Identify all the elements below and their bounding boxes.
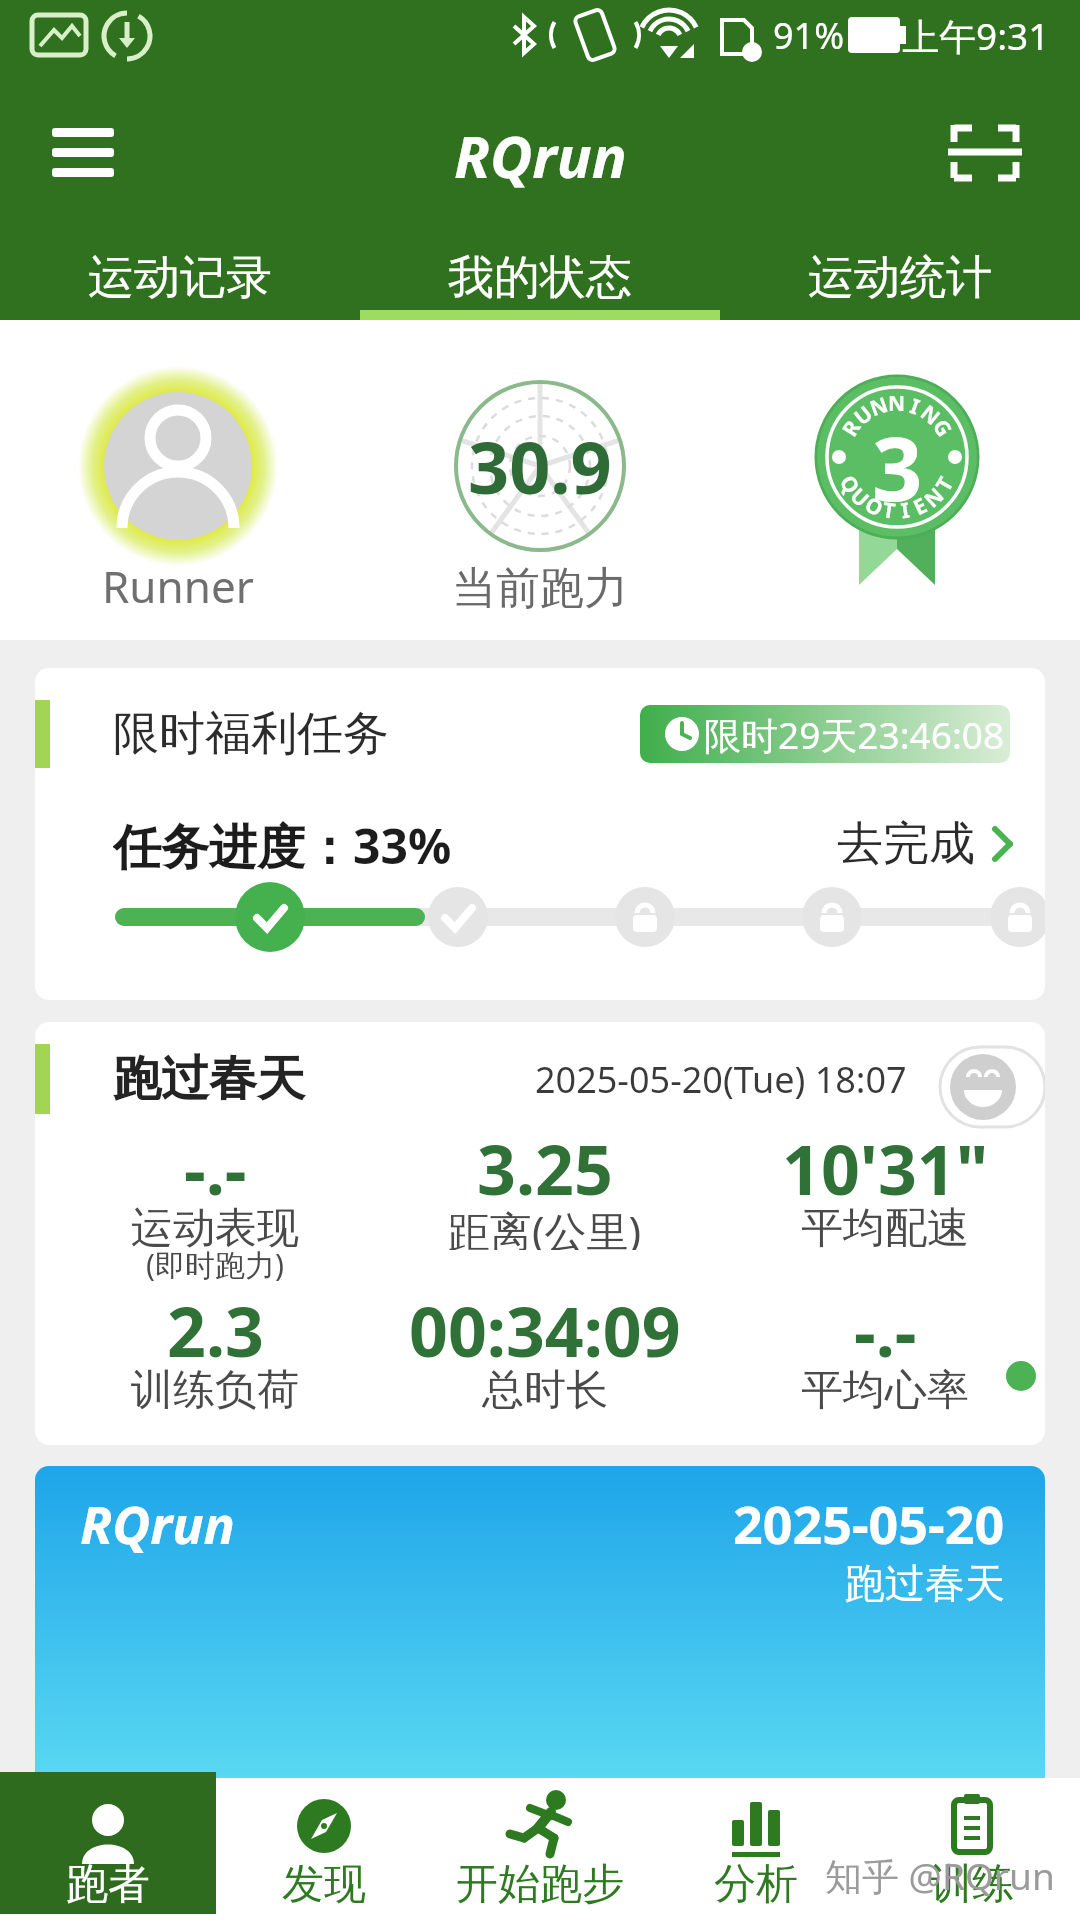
button[interactable]: 运动记录 bbox=[0, 236, 360, 320]
button[interactable] bbox=[40, 120, 130, 190]
button[interactable]: RQrun bbox=[35, 1466, 1045, 1778]
staticText: 分析 bbox=[714, 1858, 798, 1908]
staticText: T bbox=[881, 495, 898, 526]
staticText: 限时福利任务 bbox=[113, 705, 389, 763]
staticText: -.- bbox=[854, 1284, 917, 1364]
staticText: 平均心率 bbox=[801, 1364, 969, 1412]
staticText: 我的状态 bbox=[448, 249, 632, 307]
staticText: N bbox=[888, 389, 906, 418]
button[interactable]: 跑者 bbox=[0, 1772, 216, 1914]
button[interactable]: 运动统计 bbox=[720, 236, 1080, 320]
staticText: RQrun bbox=[80, 1488, 236, 1558]
staticText: N bbox=[866, 390, 892, 423]
staticText: 跑过春天 bbox=[845, 1558, 1005, 1608]
staticText: 2025-05-20 bbox=[733, 1488, 1005, 1552]
button[interactable]: 开始跑步 bbox=[432, 1778, 648, 1920]
staticText: 知乎 @RQrun bbox=[825, 1850, 1055, 1901]
staticText: 训练 bbox=[930, 1858, 1014, 1908]
staticText: 距离(公里) bbox=[448, 1202, 642, 1250]
staticText: 开始跑步 bbox=[456, 1858, 624, 1908]
staticText: N bbox=[918, 481, 951, 514]
staticText: I bbox=[899, 495, 912, 525]
button[interactable]: 训练 bbox=[864, 1778, 1080, 1920]
staticText: U bbox=[848, 399, 879, 432]
staticText: O bbox=[860, 490, 888, 523]
staticText: 当前跑力 bbox=[452, 561, 628, 616]
staticText: (即时跑力) bbox=[146, 1244, 284, 1284]
button[interactable]: 跑过春天 bbox=[35, 1022, 1045, 1445]
staticText: 总时长 bbox=[482, 1364, 608, 1412]
staticText: 跑过春天 bbox=[113, 1049, 305, 1109]
button[interactable]: 分析 bbox=[648, 1778, 864, 1920]
staticText: 2025-05-20(Tue) 18:07 bbox=[535, 1055, 907, 1104]
staticText: 训练负荷 bbox=[131, 1364, 299, 1412]
staticText: 3 bbox=[872, 407, 923, 507]
staticText: T bbox=[929, 471, 960, 497]
staticText: U bbox=[844, 481, 875, 513]
staticText: RQrun bbox=[454, 116, 627, 195]
staticText: I bbox=[906, 391, 924, 422]
staticText: 91% bbox=[773, 11, 845, 60]
staticText: 运动记录 bbox=[88, 249, 272, 307]
staticText: 运动表现 bbox=[131, 1202, 299, 1250]
staticText: E bbox=[908, 491, 932, 522]
button[interactable] bbox=[940, 118, 1032, 196]
staticText: 10'31" bbox=[782, 1122, 989, 1202]
staticText: 30.9 bbox=[468, 417, 612, 515]
button[interactable]: 发现 bbox=[216, 1778, 432, 1920]
staticText: 跑者 bbox=[66, 1858, 150, 1908]
staticText: Q bbox=[833, 470, 867, 499]
staticText: G bbox=[926, 414, 959, 443]
staticText: 平均配速 bbox=[801, 1202, 969, 1250]
staticText: 去完成 bbox=[837, 815, 975, 873]
staticText: 3.25 bbox=[477, 1122, 613, 1202]
staticText: 运动统计 bbox=[808, 249, 992, 307]
button[interactable]: 限时福利任务 bbox=[35, 668, 1045, 1000]
staticText: Runner bbox=[102, 556, 254, 616]
staticText: 00:34:09 bbox=[409, 1284, 681, 1364]
button[interactable]: 我的状态 bbox=[360, 236, 720, 320]
staticText: R bbox=[835, 415, 867, 442]
staticText: 任务进度：33% bbox=[113, 813, 452, 875]
staticText: 2.3 bbox=[167, 1284, 264, 1364]
staticText: 限时29天23:46:08 bbox=[704, 709, 1005, 760]
staticText: 发现 bbox=[282, 1858, 366, 1908]
staticText: N bbox=[915, 398, 947, 432]
staticText: -.- bbox=[184, 1122, 247, 1202]
button[interactable]: 去完成 bbox=[775, 813, 1035, 875]
staticText: 上午9:31 bbox=[902, 10, 1050, 61]
